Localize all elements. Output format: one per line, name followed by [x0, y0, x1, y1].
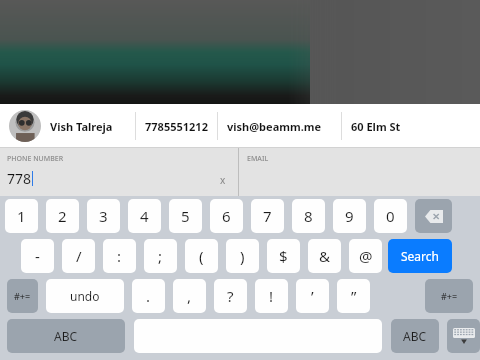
button[interactable]: & [308, 239, 341, 273]
staticText: x [220, 173, 226, 185]
staticText: 60 Elm St [351, 119, 401, 134]
staticText: 5 [181, 206, 190, 226]
staticText: ! [269, 286, 274, 306]
staticText: EMAIL [247, 154, 269, 164]
button[interactable]: 9 [333, 199, 366, 233]
button[interactable]: 4 [128, 199, 161, 233]
button[interactable]: ? [214, 279, 247, 313]
button[interactable]: ABC [7, 319, 125, 353]
staticText: ? [227, 286, 234, 306]
staticText: - [35, 246, 40, 266]
staticText: ABC [403, 328, 427, 344]
staticText: : [117, 246, 122, 266]
staticText: ABC [54, 328, 78, 344]
button[interactable]: EMAIL [239, 148, 480, 196]
button[interactable]: , [173, 279, 206, 313]
staticText: . [146, 286, 151, 306]
button[interactable]: . [132, 279, 165, 313]
staticText: ; [158, 246, 163, 266]
button[interactable]: ( [185, 239, 218, 273]
button[interactable]: Backspace [415, 199, 452, 233]
staticText: 3 [99, 206, 108, 226]
staticText: & [319, 246, 330, 266]
button[interactable]: Hide keyboard [447, 319, 480, 353]
staticText: 8 [304, 206, 313, 226]
staticText: Vish Talreja [50, 119, 113, 134]
button[interactable]: Clear [217, 173, 229, 185]
button[interactable]: ABC [391, 319, 439, 353]
staticText: 6 [222, 206, 231, 226]
staticText: 4 [140, 206, 149, 226]
button[interactable]: 7 [251, 199, 284, 233]
staticText: ” [351, 286, 357, 306]
button[interactable]: 0 [374, 199, 407, 233]
button[interactable]: 8 [292, 199, 325, 233]
button[interactable]: @ [349, 239, 382, 273]
staticText: 778 [7, 169, 32, 188]
button[interactable]: 1 [5, 199, 38, 233]
button[interactable]: - [21, 239, 54, 273]
button[interactable]: / [62, 239, 95, 273]
staticText: @ [359, 246, 373, 266]
staticText: 1 [17, 206, 26, 226]
button[interactable]: 5 [169, 199, 202, 233]
staticText: / [76, 246, 82, 266]
button[interactable]: ” [337, 279, 370, 313]
button[interactable]: Search [388, 239, 452, 273]
staticText: , [187, 286, 192, 306]
button[interactable]: 2 [46, 199, 79, 233]
staticText: vish@beamm.me [227, 119, 322, 134]
button[interactable]: ’ [296, 279, 329, 313]
staticText: 2 [58, 206, 67, 226]
button[interactable]: ) [226, 239, 259, 273]
staticText: undo [70, 288, 100, 304]
button[interactable]: #+= [425, 279, 473, 313]
button[interactable]: #+= [7, 279, 38, 313]
button[interactable]: ; [144, 239, 177, 273]
staticText: #+= [441, 290, 458, 302]
button[interactable]: 3 [87, 199, 120, 233]
staticText: ) [240, 246, 245, 266]
staticText: PHONE NUMBER [7, 154, 64, 164]
staticText: 9 [345, 206, 354, 226]
staticText: ’ [311, 286, 314, 306]
staticText: $ [279, 246, 288, 266]
staticText: 7 [263, 206, 272, 226]
button[interactable]: PHONE NUMBER [0, 148, 238, 196]
button[interactable]: 6 [210, 199, 243, 233]
staticText: 0 [386, 206, 395, 226]
staticText: Search [401, 248, 439, 264]
staticText: ( [199, 246, 204, 266]
button[interactable]: ! [255, 279, 288, 313]
button[interactable]: undo [46, 279, 124, 313]
staticText: #+= [14, 290, 31, 302]
button[interactable]: $ [267, 239, 300, 273]
button[interactable]: : [103, 239, 136, 273]
staticText: 7785551212 [145, 119, 208, 134]
